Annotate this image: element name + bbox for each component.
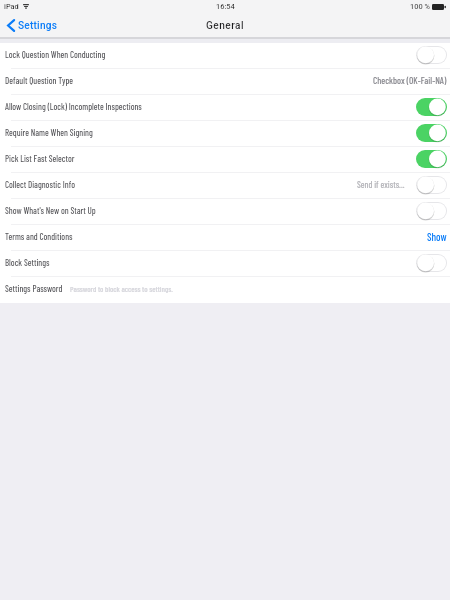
staticText: iPad [4, 2, 19, 11]
staticText: Allow Closing (Lock) Incomplete Inspecti… [5, 101, 142, 112]
staticText: 16:54 [216, 2, 235, 11]
button[interactable]: Switch off [416, 176, 447, 194]
button[interactable]: Terms and Conditions [0, 225, 450, 251]
button[interactable]: Default Question Type [0, 69, 450, 95]
button[interactable]: Switch off [416, 46, 447, 64]
staticText: Lock Question When Conducting [5, 49, 106, 60]
button[interactable]: Allow Closing (Lock) Incomplete Inspecti… [0, 95, 450, 121]
button[interactable]: Settings [7, 14, 58, 37]
staticText: 100 % [410, 2, 430, 11]
button[interactable]: Lock Question When Conducting [0, 43, 450, 69]
staticText: Show What's New on Start Up [5, 205, 96, 216]
staticText: Default Question Type [5, 75, 74, 86]
staticText: Settings [18, 20, 58, 32]
staticText: Require Name When Signing [5, 127, 93, 138]
staticText: Send if exists... [357, 179, 405, 190]
staticText: Terms and Conditions [5, 231, 73, 242]
button[interactable]: Switch on [416, 124, 447, 142]
staticText: Password to block access to settings. [70, 284, 173, 293]
button[interactable]: Switch off [416, 202, 447, 220]
staticText: Show [427, 230, 447, 243]
button[interactable]: Settings Password [0, 277, 450, 303]
button[interactable]: Collect Diagnostic Info [0, 173, 450, 199]
staticText: Block Settings [5, 257, 50, 268]
button[interactable]: Switch on [416, 150, 447, 168]
button[interactable]: Switch off [416, 254, 447, 272]
button[interactable]: Block Settings [0, 251, 450, 277]
staticText: General [206, 20, 245, 32]
button[interactable]: Switch on [416, 98, 447, 116]
staticText: Collect Diagnostic Info [5, 179, 76, 190]
button[interactable]: Show What's New on Start Up [0, 199, 450, 225]
staticText: Pick List Fast Selector [5, 153, 75, 164]
button[interactable]: Pick List Fast Selector [0, 147, 450, 173]
button[interactable]: Require Name When Signing [0, 121, 450, 147]
staticText: Settings Password [5, 283, 63, 294]
staticText: Checkbox (OK-Fail-NA) [373, 75, 447, 86]
